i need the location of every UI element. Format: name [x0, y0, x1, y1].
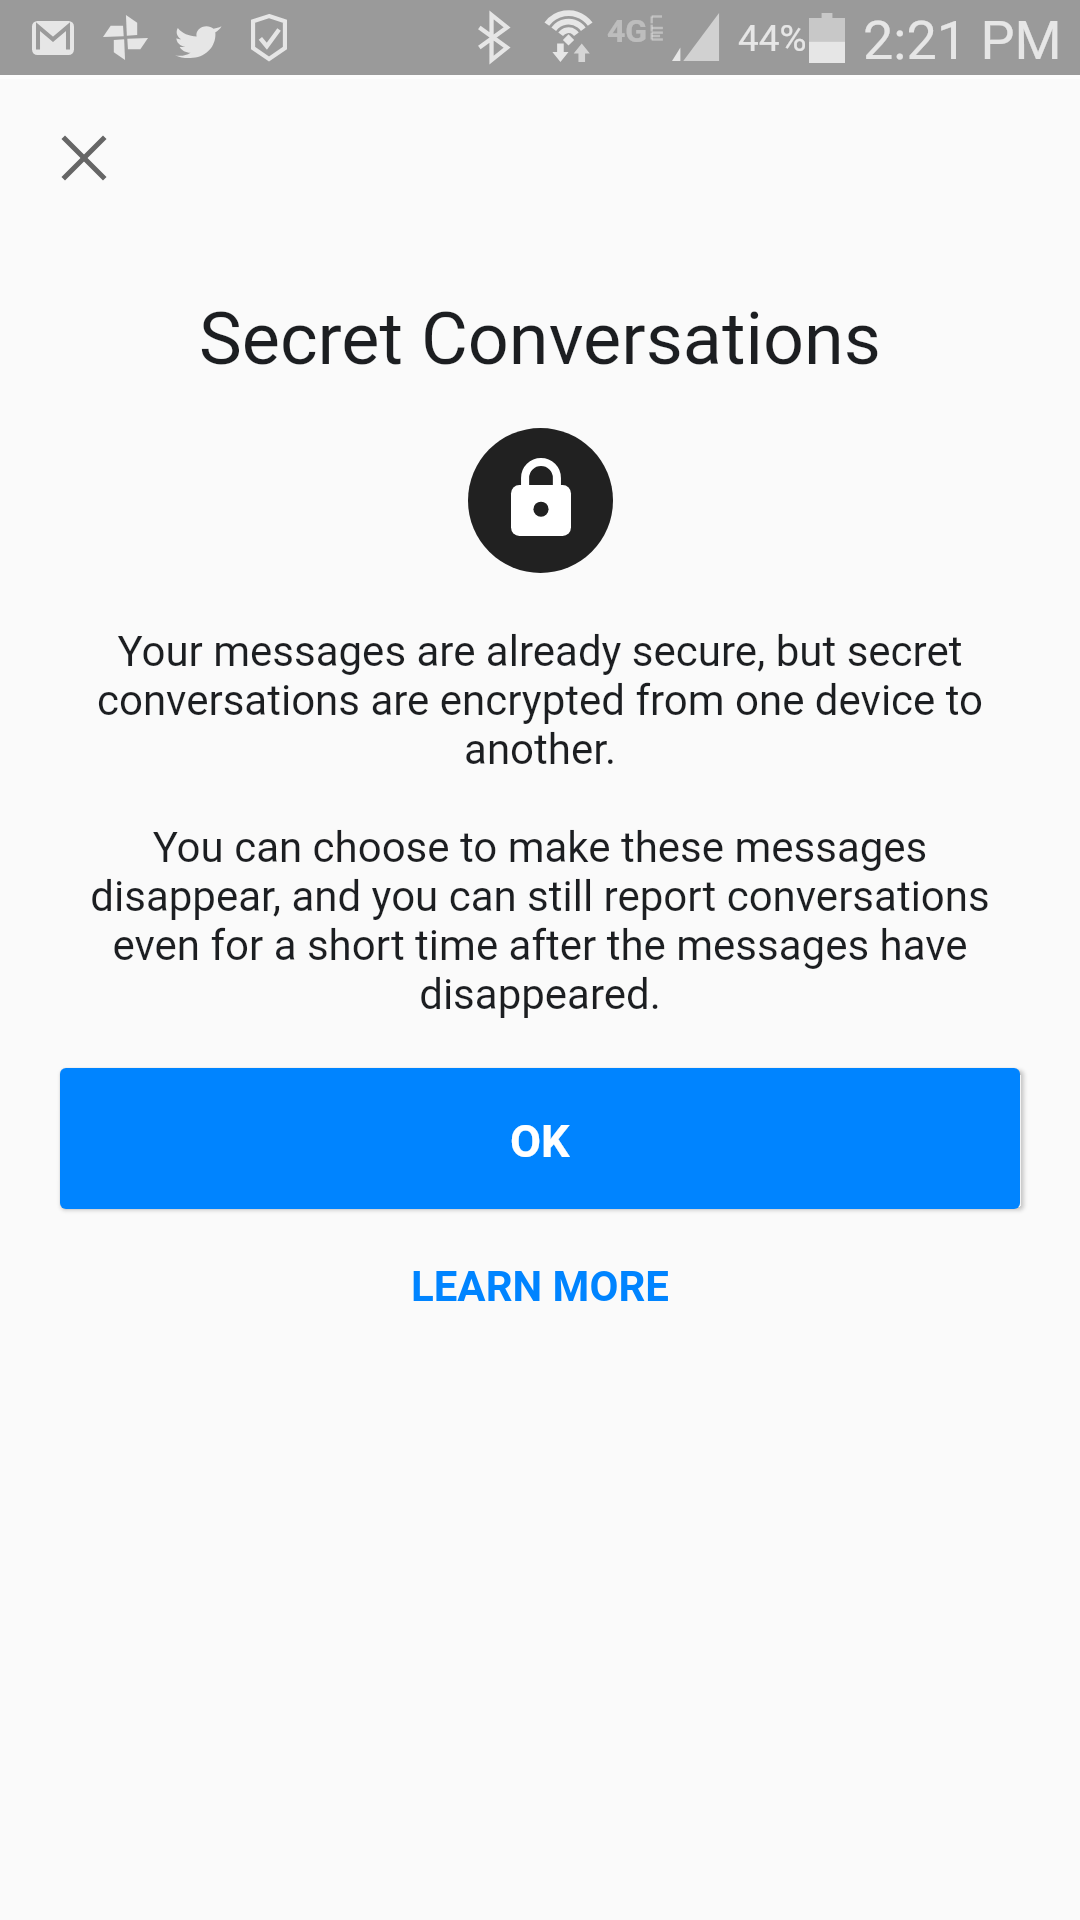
- staticText: 44%: [738, 17, 807, 60]
- staticText: Your messages are already secure, but se…: [70, 627, 1010, 1019]
- staticText: 4G: [607, 12, 648, 50]
- staticText: 2:21 PM: [863, 9, 1062, 72]
- staticText: LEARN MORE: [411, 1262, 669, 1311]
- button[interactable]: Close: [24, 98, 144, 218]
- button[interactable]: OK: [60, 1068, 1020, 1209]
- staticText: Secret Conversations: [0, 297, 1080, 381]
- staticText: OK: [510, 1115, 570, 1168]
- button[interactable]: LEARN MORE: [0, 1206, 1080, 1366]
